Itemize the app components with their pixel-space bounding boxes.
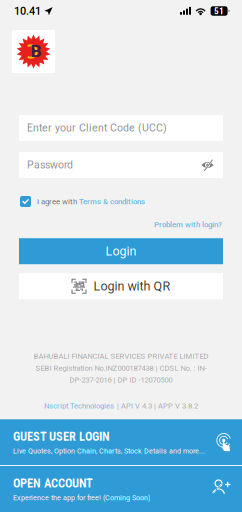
staticText: Problem with login? (154, 220, 222, 229)
button[interactable]: Login (19, 238, 223, 264)
staticText: GUEST USER LOGIN (13, 429, 110, 444)
button[interactable]: GUEST USER LOGIN (0, 419, 242, 465)
staticText: Login with QR (93, 279, 170, 294)
staticText: SEBI Registration No.INZ000187438 | CDSL… (35, 364, 206, 372)
staticText: Password (27, 159, 73, 171)
staticText: Login (105, 244, 136, 259)
staticText: Nscript Technologies (44, 401, 114, 410)
button[interactable]: Nscript Technologies (44, 401, 114, 410)
staticText: B (30, 41, 41, 61)
staticText: DP-237-2016 | DP ID -12070500 (69, 375, 172, 384)
button[interactable]: OPEN ACCOUNT (0, 466, 242, 512)
staticText: | API V 4.3 | APP V 3.8.2 (117, 401, 198, 410)
staticText: 51 (214, 5, 224, 16)
button[interactable]: Login with QR (19, 273, 223, 299)
staticText: BAHUBALI FINANCIAL SERVICES PRIVATE LIMI… (33, 352, 208, 361)
button[interactable] (20, 196, 31, 207)
staticText: 10.41 (14, 5, 41, 17)
staticText: OPEN ACCOUNT (13, 476, 93, 491)
button[interactable]: Problem with login? (154, 220, 222, 229)
staticText: Enter your Client Code (UCC) (27, 122, 167, 134)
staticText: Live Quotes, Option Chain, Charts, Stock… (13, 447, 205, 455)
staticText: Experience the app for free! (Coming Soo… (13, 494, 150, 502)
button[interactable]: Terms & conditions (79, 197, 145, 206)
staticText: I agree with (37, 197, 79, 206)
staticText: Terms & conditions (79, 197, 145, 206)
